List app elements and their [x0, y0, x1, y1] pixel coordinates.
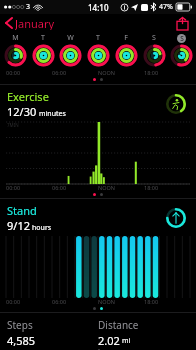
button[interactable]: Share — [169, 15, 196, 32]
staticText: F — [124, 33, 128, 43]
button[interactable] — [168, 44, 194, 67]
button[interactable] — [30, 44, 56, 67]
staticText: Stand — [7, 203, 37, 218]
staticText: T — [96, 33, 100, 43]
staticText: W — [67, 33, 74, 43]
staticText: 14:10 — [88, 2, 109, 13]
staticText: 12/30 — [7, 104, 37, 119]
staticText: 06:00 — [52, 69, 67, 76]
staticText: hours — [32, 223, 52, 233]
staticText: Distance — [98, 318, 139, 332]
staticText: 06:00 — [52, 298, 67, 305]
staticText: minutes — [39, 109, 66, 119]
staticText: 18:00 — [144, 69, 159, 76]
button[interactable]: Distance — [98, 318, 189, 346]
staticText: 00:00 — [6, 298, 21, 305]
button[interactable]: Stand details — [163, 205, 189, 231]
staticText: 06:00 — [52, 184, 67, 191]
button[interactable] — [141, 44, 167, 67]
staticText: 7MIN — [7, 122, 19, 128]
staticText: S — [152, 33, 156, 43]
staticText: 18:00 — [144, 184, 159, 191]
button[interactable] — [85, 44, 111, 67]
staticText: mi — [122, 336, 131, 346]
button[interactable]: January — [0, 14, 63, 32]
staticText: Exercise — [7, 89, 49, 104]
staticText: 4,585 — [7, 333, 36, 346]
staticText: Steps — [7, 318, 33, 332]
staticText: T — [41, 33, 45, 43]
staticText: S — [180, 34, 184, 43]
staticText: NOON — [98, 69, 115, 76]
button[interactable] — [2, 44, 28, 67]
staticText: 9/12 — [7, 218, 30, 233]
button[interactable] — [113, 44, 139, 67]
staticText: M — [12, 33, 19, 43]
staticText: 47% — [159, 2, 173, 12]
staticText: NOON — [98, 298, 115, 305]
button[interactable]: Exercise details — [163, 91, 189, 117]
staticText: NOON — [98, 184, 115, 191]
staticText: 00:00 — [6, 184, 21, 191]
staticText: 2.02 — [98, 333, 120, 346]
button[interactable] — [57, 44, 83, 67]
staticText: 00:00 — [6, 69, 21, 76]
button[interactable]: Steps — [7, 318, 98, 346]
staticText: 18:00 — [144, 298, 159, 305]
staticText: 3 — [26, 2, 31, 12]
staticText: January — [15, 16, 55, 30]
